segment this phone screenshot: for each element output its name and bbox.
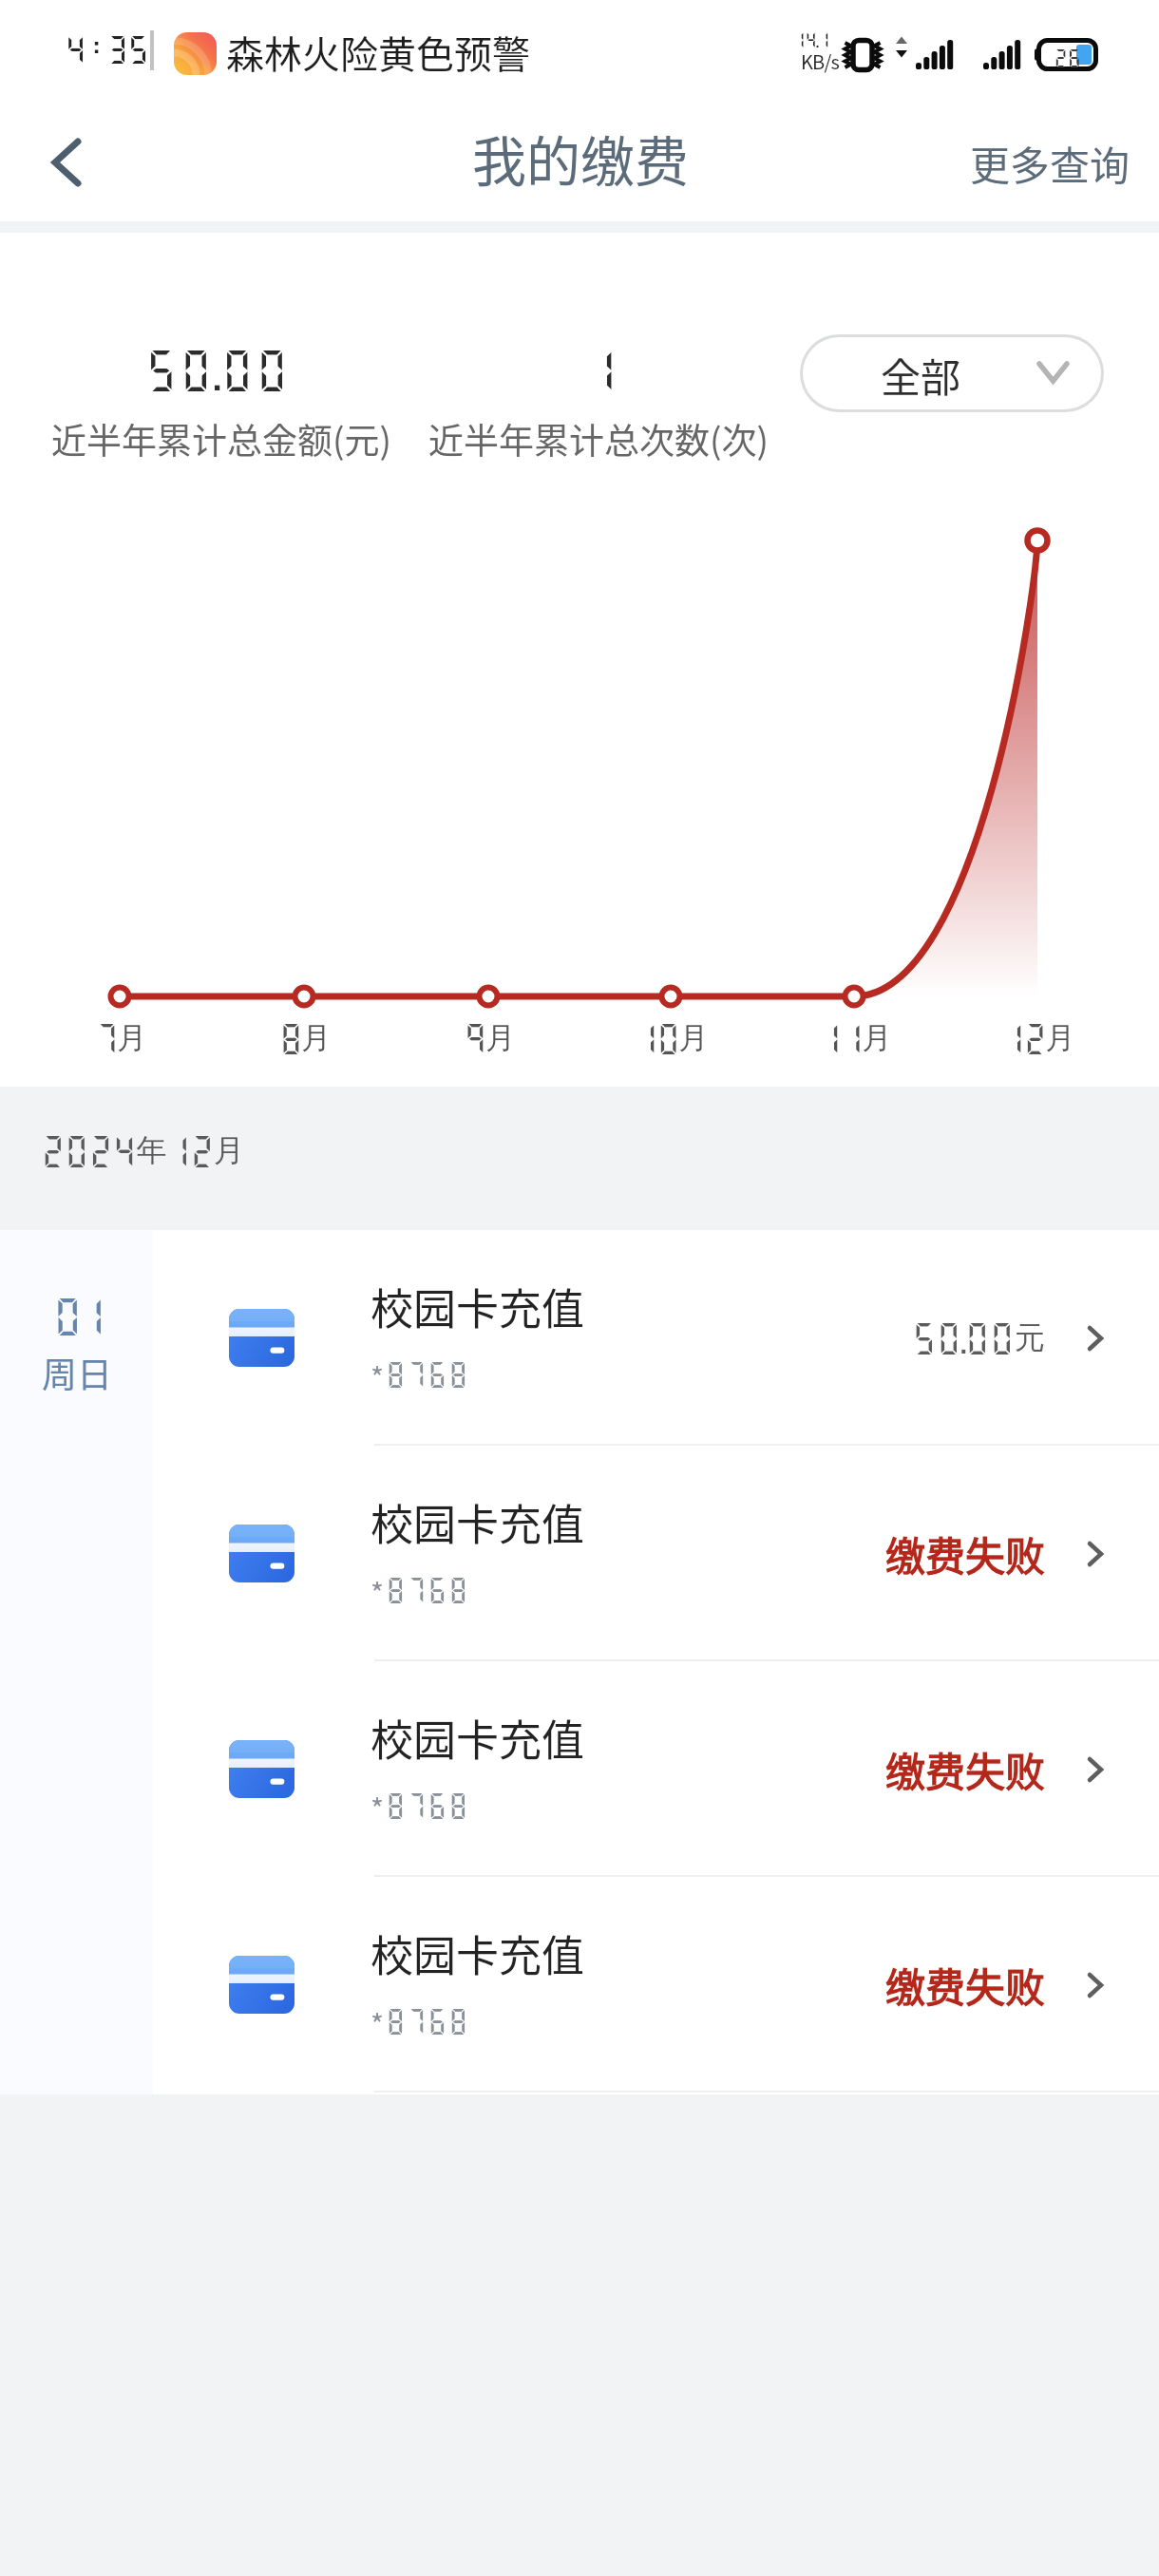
staticText: 8768 <box>386 1574 470 1606</box>
staticText: 11月 <box>818 1019 891 1057</box>
staticText: 1 <box>585 344 617 395</box>
staticText: 全部 <box>881 346 961 404</box>
staticText: 26 <box>1054 46 1081 69</box>
staticText: 缴费失败 <box>885 1956 1046 2014</box>
staticText: 我的缴费 <box>472 119 689 198</box>
staticText: 森林火险黄色预警 <box>226 25 530 80</box>
staticText: 4:35 <box>65 31 149 66</box>
staticText: 8768 <box>386 1790 470 1822</box>
staticText: 9月 <box>464 1019 514 1057</box>
staticText: * <box>370 2002 385 2043</box>
staticText: 50.00元 <box>912 1318 1046 1357</box>
button[interactable]: 更多查询 <box>962 126 1138 199</box>
staticText: 14.1 <box>793 29 830 49</box>
staticText: 12月 <box>1001 1019 1074 1057</box>
staticText: 更多查询 <box>970 134 1130 192</box>
staticText: * <box>370 1571 385 1612</box>
button[interactable]: 校园卡充值 <box>153 1230 1159 1446</box>
staticText: 校园卡充值 <box>370 1276 585 1337</box>
button[interactable]: 全部 <box>803 337 1101 409</box>
button[interactable]: 校园卡充值 <box>153 1661 1159 1877</box>
staticText: 缴费失败 <box>885 1525 1046 1582</box>
button[interactable]: 校园卡充值 <box>153 1877 1159 2093</box>
staticText: 校园卡充值 <box>370 1491 585 1553</box>
staticText: 8768 <box>386 1358 470 1391</box>
staticText: 校园卡充值 <box>370 1707 585 1769</box>
staticText: 50.00 <box>145 344 292 395</box>
staticText: * <box>370 1787 385 1828</box>
staticText: 校园卡充值 <box>370 1923 585 1984</box>
staticText: 近半年累计总次数(次) <box>428 413 769 464</box>
button[interactable]: Back <box>25 126 97 199</box>
staticText: * <box>370 1355 385 1396</box>
staticText: 2024年12月 <box>41 1131 244 1170</box>
staticText: 周日 <box>42 1347 112 1398</box>
staticText: KB/s <box>801 47 840 75</box>
staticText: 01 <box>53 1293 101 1339</box>
staticText: 7月 <box>95 1019 145 1057</box>
staticText: 近半年累计总金额(元) <box>51 413 392 464</box>
staticText: 8768 <box>386 2005 470 2037</box>
staticText: 8月 <box>279 1019 330 1057</box>
button[interactable]: 校园卡充值 <box>153 1446 1159 1661</box>
staticText: 缴费失败 <box>885 1740 1046 1798</box>
staticText: 10月 <box>635 1019 708 1057</box>
